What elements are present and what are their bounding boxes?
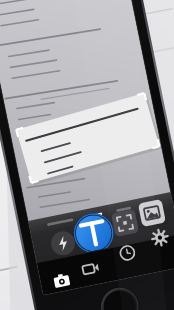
button[interactable]: Home (73, 244, 111, 284)
button[interactable]: Scan code (94, 163, 119, 195)
button[interactable]: Flash (24, 175, 48, 207)
button[interactable]: Settings (121, 186, 145, 212)
button[interactable]: Video (48, 209, 72, 235)
other: Camera text scanner on phone over worksh… (0, 0, 174, 310)
button[interactable]: Flashcards (46, 159, 66, 172)
button[interactable]: Camera (20, 218, 44, 244)
button[interactable]: History (87, 197, 111, 223)
button[interactable]: Scan text (58, 168, 92, 206)
button[interactable]: Math (94, 149, 112, 162)
button[interactable]: General (71, 154, 91, 167)
